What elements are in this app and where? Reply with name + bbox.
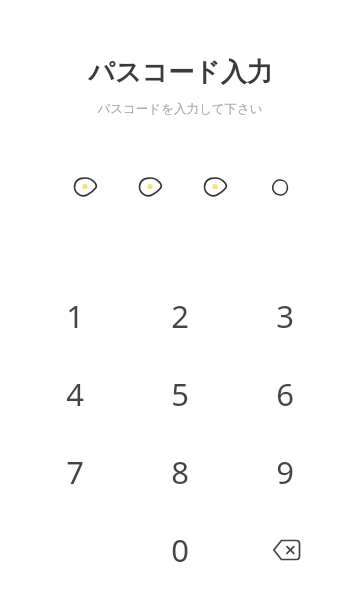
staticText: 0 <box>171 529 189 571</box>
button[interactable]: 5 <box>120 355 240 433</box>
button[interactable]: 7 <box>15 433 135 511</box>
staticText: 8 <box>171 451 189 493</box>
button[interactable]: Backspace <box>227 511 347 589</box>
button[interactable]: 1 <box>15 277 135 355</box>
staticText: 4 <box>66 373 84 415</box>
staticText: 2 <box>171 295 189 337</box>
button[interactable]: 3 <box>225 277 345 355</box>
button[interactable]: 2 <box>120 277 240 355</box>
staticText: 5 <box>171 373 189 415</box>
staticText: パスコードを入力して下さい <box>97 101 263 117</box>
staticText: 3 <box>276 295 294 337</box>
button[interactable]: 0 <box>120 511 240 589</box>
staticText: 9 <box>276 451 294 493</box>
staticText: 7 <box>66 451 84 493</box>
button[interactable]: 6 <box>225 355 345 433</box>
button[interactable]: 8 <box>120 433 240 511</box>
staticText: 1 <box>66 295 84 337</box>
button[interactable]: 9 <box>225 433 345 511</box>
button[interactable]: 4 <box>15 355 135 433</box>
staticText: 6 <box>276 373 294 415</box>
staticText: パスコード入力 <box>88 56 273 89</box>
